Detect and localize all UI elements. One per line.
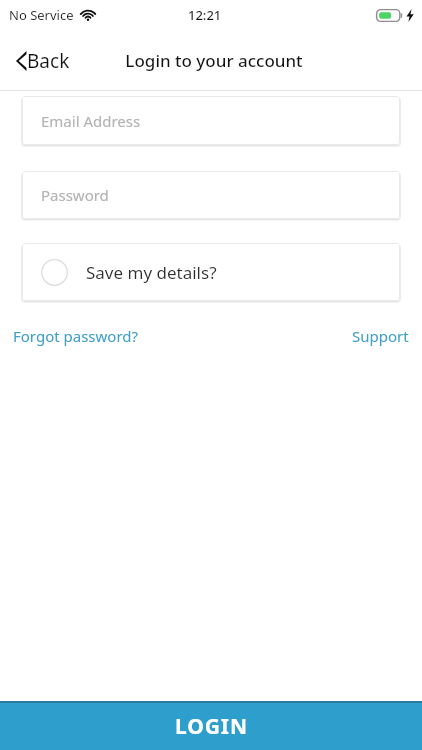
staticText: Email Address — [41, 111, 141, 131]
staticText: 12:21 — [188, 6, 222, 24]
staticText: LOGIN — [175, 712, 248, 741]
staticText: Support — [352, 326, 409, 346]
button[interactable]: Back — [13, 41, 73, 81]
staticText: Back — [27, 48, 70, 74]
staticText: Password — [41, 185, 109, 205]
staticText: Forgot password? — [13, 326, 139, 346]
button[interactable]: Forgot password? — [11, 322, 141, 350]
button[interactable]: Email Address — [22, 96, 400, 145]
staticText: Login to your account — [125, 49, 303, 72]
button[interactable]: Password — [22, 171, 400, 219]
staticText: No Service — [9, 6, 74, 24]
button[interactable]: Support — [350, 322, 411, 350]
button[interactable]: LOGIN — [0, 703, 422, 750]
button[interactable]: Save my details? — [22, 243, 400, 301]
staticText: Save my details? — [86, 261, 217, 284]
